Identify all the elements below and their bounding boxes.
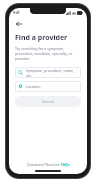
staticText: Try searching for a symptom, procedure, …: [15, 46, 81, 61]
staticText: FAQs: [61, 162, 70, 167]
staticText: Symptom, procedure, name, etc.: [26, 68, 78, 78]
staticText: Find a provider: [15, 33, 68, 43]
button[interactable]: Questions? Read our: [9, 162, 87, 167]
staticText: Location: [26, 84, 41, 89]
button[interactable]: Symptom, procedure, name, etc.: [15, 67, 81, 78]
staticText: Questions? Read our: [27, 162, 61, 167]
staticText: 9:41: [13, 10, 20, 15]
button[interactable]: Back: [14, 19, 24, 29]
button[interactable]: Location: [15, 81, 81, 92]
button[interactable]: Search: [15, 96, 81, 107]
staticText: Search: [42, 99, 55, 104]
